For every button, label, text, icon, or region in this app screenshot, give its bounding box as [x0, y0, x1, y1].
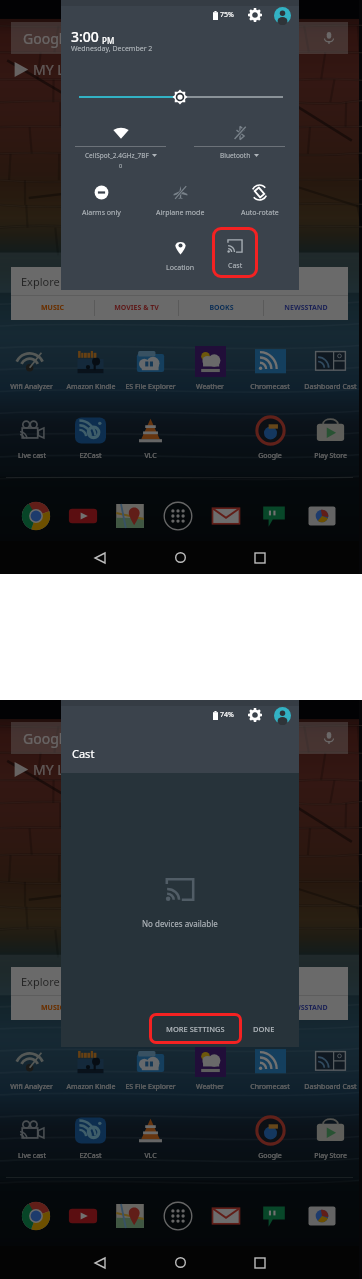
- button[interactable]: NEWSSTAND: [264, 296, 348, 320]
- staticText: 0: [119, 162, 123, 169]
- button[interactable]: Bluetooth: [194, 123, 285, 175]
- button[interactable]: MOVIES & TV: [95, 296, 178, 320]
- button[interactable]: Photos: [298, 498, 346, 534]
- button[interactable]: Settings: [246, 700, 264, 730]
- staticText: Play Store: [314, 1151, 347, 1161]
- button[interactable]: Maps: [106, 498, 154, 534]
- button[interactable]: Hangouts: [250, 1198, 298, 1234]
- button[interactable]: Weather: [180, 1046, 240, 1096]
- button[interactable]: EZCast: [61, 415, 120, 465]
- staticText: 3:00: [71, 27, 99, 46]
- staticText: Live cast: [18, 1151, 46, 1161]
- staticText: Google: [23, 29, 71, 48]
- button[interactable]: Maps: [106, 1198, 154, 1234]
- staticText: EZCast: [79, 451, 102, 461]
- button[interactable]: YouTube: [59, 498, 106, 534]
- staticText: Google: [23, 729, 71, 748]
- button[interactable]: Gmail: [202, 1198, 250, 1234]
- button[interactable]: MUSIC: [11, 996, 94, 1020]
- staticText: MOVIES & TV: [114, 303, 159, 313]
- button[interactable]: Google: [240, 1115, 300, 1165]
- button[interactable]: BOOKS: [179, 296, 263, 320]
- staticText: Google: [258, 451, 282, 461]
- staticText: CellSpot_2.4GHz_7BF: [85, 151, 149, 160]
- button[interactable]: Recents: [220, 541, 300, 574]
- staticText: Auto-rotate: [241, 208, 279, 218]
- staticText: Play Store: [314, 451, 347, 461]
- button[interactable]: Chrome: [12, 498, 59, 534]
- staticText: Bluetooth: [220, 151, 251, 160]
- button[interactable]: MUSIC: [11, 296, 94, 320]
- staticText: Amazon Kindle: [66, 382, 116, 392]
- button[interactable]: Alarms only: [61, 184, 141, 218]
- button[interactable]: Amazon Kindle: [61, 1046, 120, 1096]
- staticText: ES File Explorer: [125, 382, 176, 392]
- button[interactable]: NEWSSTAND: [264, 996, 348, 1020]
- button[interactable]: Live cast: [2, 1115, 61, 1165]
- button[interactable]: DONE: [248, 1016, 280, 1042]
- button[interactable]: Chrome: [12, 1198, 59, 1234]
- staticText: DONE: [253, 1024, 275, 1034]
- staticText: Wednesday, December 2: [71, 44, 153, 54]
- button[interactable]: [180, 1115, 240, 1165]
- staticText: VLC: [144, 451, 157, 461]
- staticText: MY LIBRARY: [33, 760, 113, 778]
- button[interactable]: Location: [141, 239, 220, 273]
- staticText: Wifi Analyzer: [10, 382, 53, 392]
- staticText: Airplane mode: [156, 208, 205, 218]
- button[interactable]: YouTube: [59, 1198, 106, 1234]
- button[interactable]: ES File Explorer: [120, 346, 180, 396]
- button[interactable]: Play Store: [300, 415, 360, 465]
- staticText: Cast: [228, 261, 243, 271]
- button[interactable]: Hangouts: [250, 498, 298, 534]
- button[interactable]: MOVIES & TV: [95, 996, 178, 1020]
- button[interactable]: Airplane mode: [141, 184, 220, 218]
- button[interactable]: Back: [60, 1246, 140, 1279]
- button[interactable]: Settings: [246, 0, 264, 30]
- button[interactable]: All apps: [154, 498, 202, 534]
- staticText: ES File Explorer: [125, 1082, 176, 1092]
- staticText: 75%: [220, 10, 234, 20]
- button[interactable]: BOOKS: [179, 996, 263, 1020]
- button[interactable]: User account: [273, 0, 292, 30]
- button[interactable]: [180, 415, 240, 465]
- button[interactable]: Chromecast: [240, 346, 300, 396]
- button[interactable]: Recents: [220, 1246, 300, 1279]
- staticText: Chromecast: [250, 1082, 290, 1092]
- button[interactable]: CellSpot_2.4GHz_7BF: [75, 123, 166, 175]
- button[interactable]: Home: [140, 541, 220, 574]
- button[interactable]: Wifi Analyzer: [2, 1046, 61, 1096]
- button[interactable]: Dashboard Cast: [300, 346, 360, 396]
- staticText: Dashboard Cast: [304, 382, 357, 392]
- staticText: Dashboard Cast: [304, 1082, 357, 1092]
- staticText: Cast: [72, 746, 95, 761]
- button[interactable]: Live cast: [2, 415, 61, 465]
- button[interactable]: Google: [240, 415, 300, 465]
- button[interactable]: Cast: [212, 227, 258, 278]
- button[interactable]: MORE SETTINGS: [149, 1013, 242, 1044]
- button[interactable]: All apps: [154, 1198, 202, 1234]
- button[interactable]: Home: [140, 1246, 220, 1279]
- button[interactable]: VLC: [120, 1115, 180, 1165]
- button[interactable]: Play Store: [300, 1115, 360, 1165]
- button[interactable]: Weather: [180, 346, 240, 396]
- button[interactable]: EZCast: [61, 1115, 120, 1165]
- button[interactable]: ES File Explorer: [120, 1046, 180, 1096]
- button[interactable]: Amazon Kindle: [61, 346, 120, 396]
- staticText: Wifi Analyzer: [10, 1082, 53, 1092]
- staticText: MUSIC: [41, 303, 64, 313]
- button[interactable]: Photos: [298, 1198, 346, 1234]
- button[interactable]: Chromecast: [240, 1046, 300, 1096]
- staticText: Amazon Kindle: [66, 1082, 116, 1092]
- staticText: Live cast: [18, 451, 46, 461]
- button[interactable]: Dashboard Cast: [300, 1046, 360, 1096]
- button[interactable]: VLC: [120, 415, 180, 465]
- button[interactable]: Wifi Analyzer: [2, 346, 61, 396]
- button[interactable]: Auto-rotate: [220, 184, 299, 218]
- button[interactable]: Gmail: [202, 498, 250, 534]
- button[interactable]: User account: [273, 700, 292, 730]
- staticText: BOOKS: [209, 303, 234, 313]
- button[interactable]: Back: [60, 541, 140, 574]
